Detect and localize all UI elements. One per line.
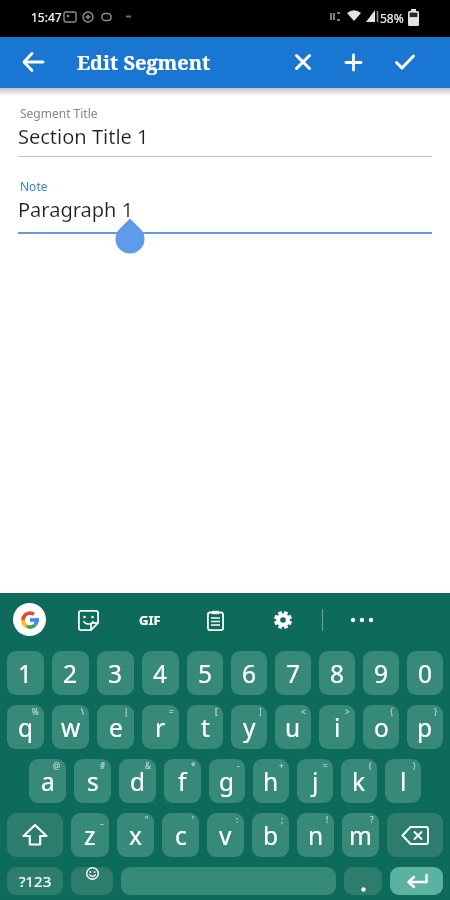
staticText: ?: [370, 814, 374, 825]
button[interactable]: [346, 604, 378, 636]
staticText: 6: [242, 657, 257, 690]
staticText: f: [178, 765, 187, 798]
button[interactable]: r: [142, 705, 179, 749]
button[interactable]: [269, 606, 297, 634]
staticText: 8: [330, 657, 345, 690]
staticText: b: [263, 819, 279, 852]
staticText: y: [243, 711, 256, 744]
button[interactable]: t: [187, 705, 223, 749]
button[interactable]: v: [207, 813, 244, 857]
staticText: x: [129, 819, 142, 852]
button[interactable]: [18, 171, 432, 234]
button[interactable]: 2: [52, 651, 89, 695]
button[interactable]: m: [342, 813, 379, 857]
button[interactable]: [71, 867, 113, 895]
button[interactable]: b: [252, 813, 289, 857]
button[interactable]: w: [52, 705, 89, 749]
button[interactable]: l: [385, 759, 421, 803]
staticText: t: [201, 711, 210, 744]
button[interactable]: i: [319, 705, 355, 749]
button[interactable]: [201, 606, 229, 634]
button[interactable]: 7: [275, 651, 311, 695]
staticText: \: [81, 706, 84, 717]
staticText: d: [130, 765, 146, 798]
staticText: Section Title 1: [18, 123, 149, 150]
button[interactable]: u: [275, 705, 311, 749]
button[interactable]: [384, 41, 426, 83]
staticText: Edit Segment: [77, 49, 211, 76]
button[interactable]: f: [164, 759, 201, 803]
staticText: o: [374, 711, 389, 744]
button[interactable]: [332, 41, 374, 83]
staticText: 58%: [380, 10, 404, 26]
button[interactable]: ?123: [7, 867, 63, 895]
button[interactable]: h: [253, 759, 289, 803]
button[interactable]: x: [117, 813, 154, 857]
button[interactable]: q: [7, 705, 44, 749]
staticText: v: [219, 819, 232, 852]
button[interactable]: [18, 98, 432, 158]
button[interactable]: j: [297, 759, 333, 803]
staticText: &: [145, 760, 151, 771]
button[interactable]: e: [97, 705, 134, 749]
button[interactable]: 4: [142, 651, 179, 695]
button[interactable]: 8: [319, 651, 355, 695]
button[interactable]: [13, 603, 46, 636]
button[interactable]: g: [209, 759, 245, 803]
staticText: =: [169, 706, 174, 717]
staticText: -: [237, 760, 240, 771]
button[interactable]: a: [29, 759, 66, 803]
button[interactable]: [74, 606, 102, 634]
staticText: 1: [18, 657, 33, 690]
staticText: i: [334, 711, 341, 744]
staticText: n: [308, 819, 324, 852]
staticText: 3: [108, 657, 123, 690]
staticText: Segment Title: [20, 105, 98, 121]
button[interactable]: c: [162, 813, 199, 857]
staticText: ;: [281, 814, 284, 825]
button[interactable]: s: [74, 759, 111, 803]
button[interactable]: [12, 41, 54, 83]
button[interactable]: [344, 867, 382, 895]
staticText: ): [413, 760, 416, 771]
button[interactable]: 3: [97, 651, 134, 695]
staticText: Note: [20, 178, 48, 194]
staticText: }: [434, 706, 438, 717]
staticText: ": [145, 814, 149, 825]
button[interactable]: k: [341, 759, 377, 803]
button[interactable]: [390, 867, 443, 895]
button[interactable]: d: [119, 759, 156, 803]
staticText: #: [100, 760, 106, 771]
staticText: 5: [198, 657, 213, 690]
staticText: %: [32, 706, 39, 717]
staticText: u: [285, 711, 301, 744]
button[interactable]: p: [407, 705, 443, 749]
staticText: 2: [63, 657, 78, 690]
staticText: k: [352, 765, 366, 798]
staticText: =: [323, 760, 328, 771]
staticText: ': [192, 814, 194, 825]
staticText: ]: [259, 706, 262, 717]
button[interactable]: [387, 813, 443, 857]
button[interactable]: 6: [231, 651, 267, 695]
staticText: :: [236, 814, 239, 825]
staticText: w: [61, 711, 81, 744]
button[interactable]: 0: [407, 651, 443, 695]
button[interactable]: y: [231, 705, 267, 749]
button[interactable]: n: [297, 813, 334, 857]
button[interactable]: [7, 813, 63, 857]
staticText: l: [400, 765, 407, 798]
button[interactable]: 9: [363, 651, 399, 695]
staticText: |: [124, 706, 129, 717]
staticText: {: [390, 706, 394, 717]
button[interactable]: GIF: [128, 604, 172, 636]
button[interactable]: 1: [7, 651, 44, 695]
button[interactable]: [282, 41, 324, 83]
staticText: +: [279, 760, 284, 771]
staticText: a: [41, 765, 55, 798]
button[interactable]: z: [71, 813, 109, 857]
staticText: ?123: [19, 871, 52, 891]
button[interactable]: 5: [187, 651, 223, 695]
button[interactable]: o: [363, 705, 399, 749]
button[interactable]: [121, 867, 336, 895]
